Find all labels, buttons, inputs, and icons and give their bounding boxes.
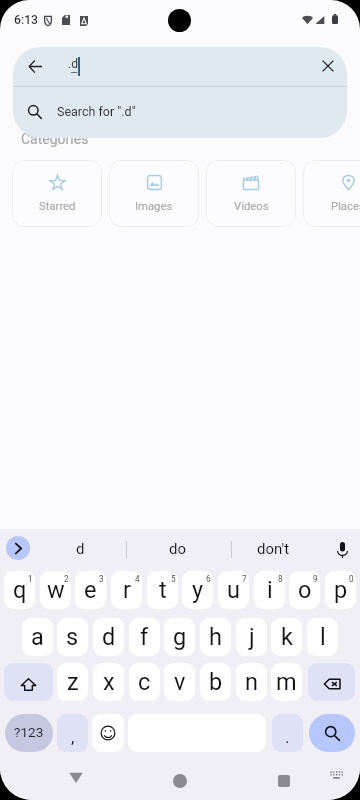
staticText: .d (68, 57, 78, 71)
staticText: . (285, 727, 290, 747)
staticText: Images (135, 200, 173, 213)
button[interactable]: Places (303, 160, 360, 227)
button[interactable]: Back (58, 759, 94, 795)
staticText: 7 (242, 574, 247, 584)
staticText: u (227, 576, 240, 604)
staticText: r (123, 576, 131, 604)
button[interactable]: o (289, 571, 320, 609)
button[interactable]: Home (162, 763, 198, 799)
staticText: m (276, 668, 297, 696)
button[interactable]: Starred (12, 160, 102, 227)
button[interactable]: a (22, 618, 53, 656)
button[interactable]: p (325, 571, 356, 609)
button[interactable]: Voice input (328, 529, 356, 570)
staticText: i (267, 576, 273, 604)
button[interactable]: s (57, 618, 88, 656)
button[interactable]: Back (13, 47, 58, 85)
button[interactable]: Images (109, 160, 199, 227)
button[interactable]: z (57, 663, 88, 701)
button[interactable]: d (34, 529, 126, 570)
button[interactable]: do (131, 529, 224, 570)
button[interactable]: t (147, 571, 178, 609)
staticText: n (245, 668, 258, 696)
staticText: 4 (135, 574, 140, 584)
button[interactable]: . (272, 714, 303, 752)
staticText: don't (257, 540, 290, 558)
button[interactable]: Clear query (307, 47, 347, 85)
staticText: 3 (99, 574, 104, 584)
staticText: 0 (349, 574, 354, 584)
staticText: y (192, 576, 204, 604)
staticText: h (209, 623, 222, 651)
staticText: k (281, 623, 293, 651)
button[interactable]: f (129, 618, 160, 656)
staticText: Categories (21, 131, 89, 147)
button[interactable]: Switch keyboard (322, 761, 350, 789)
button[interactable]: x (93, 663, 124, 701)
button[interactable]: h (200, 618, 231, 656)
staticText: 1 (28, 574, 33, 584)
staticText: p (334, 576, 348, 604)
staticText: Search for ".d" (57, 104, 136, 119)
staticText: t (159, 576, 167, 604)
staticText: , (71, 727, 75, 747)
staticText: z (67, 668, 79, 696)
button[interactable]: don't (236, 529, 310, 570)
button[interactable]: r (111, 571, 142, 609)
button[interactable]: k (271, 618, 302, 656)
staticText: 9 (313, 574, 318, 584)
staticText: ?123 (14, 724, 44, 740)
button[interactable]: Emoji (92, 714, 124, 752)
button[interactable]: Search for ".d" (13, 87, 347, 138)
staticText: 8 (278, 574, 283, 584)
staticText: 5 (171, 574, 176, 584)
button[interactable]: u (218, 571, 249, 609)
button[interactable]: i (254, 571, 285, 609)
staticText: b (209, 668, 223, 696)
button[interactable]: Recents (266, 763, 302, 799)
staticText: x (103, 668, 115, 696)
staticText: d (76, 540, 85, 558)
staticText: g (173, 623, 187, 651)
staticText: w (47, 576, 65, 604)
button[interactable]: ?123 (5, 714, 53, 752)
button[interactable]: d (93, 618, 124, 656)
button[interactable]: Shift (4, 663, 53, 701)
button[interactable]: v (164, 663, 195, 701)
staticText: j (249, 623, 255, 651)
staticText: c (138, 668, 151, 696)
button[interactable]: l (307, 618, 338, 656)
button[interactable]: q (4, 571, 35, 609)
staticText: v (174, 668, 186, 696)
button[interactable]: More suggestions (6, 536, 30, 560)
button[interactable]: w (40, 571, 71, 609)
staticText: a (31, 623, 44, 651)
button[interactable]: b (200, 663, 231, 701)
staticText: Starred (39, 200, 76, 213)
staticText: do (169, 540, 187, 558)
staticText: l (320, 623, 326, 651)
button[interactable]: g (164, 618, 195, 656)
staticText: d (102, 623, 116, 651)
button[interactable]: Search (309, 714, 355, 752)
button[interactable]: , (57, 714, 88, 752)
button[interactable]: y (182, 571, 213, 609)
staticText: 6 (206, 574, 211, 584)
button[interactable]: e (75, 571, 106, 609)
staticText: 6:13 (14, 13, 39, 27)
button[interactable]: j (236, 618, 267, 656)
button[interactable]: Backspace (308, 663, 355, 701)
button[interactable]: n (236, 663, 267, 701)
staticText: Videos (234, 200, 269, 213)
staticText: e (84, 576, 97, 604)
staticText: f (140, 623, 149, 651)
staticText: q (13, 576, 27, 604)
staticText: 2 (64, 574, 69, 584)
staticText: o (298, 576, 312, 604)
button[interactable]: Videos (206, 160, 296, 227)
button[interactable]: c (129, 663, 160, 701)
staticText: s (66, 623, 79, 651)
staticText: Places (331, 200, 360, 213)
button[interactable]: m (271, 663, 302, 701)
